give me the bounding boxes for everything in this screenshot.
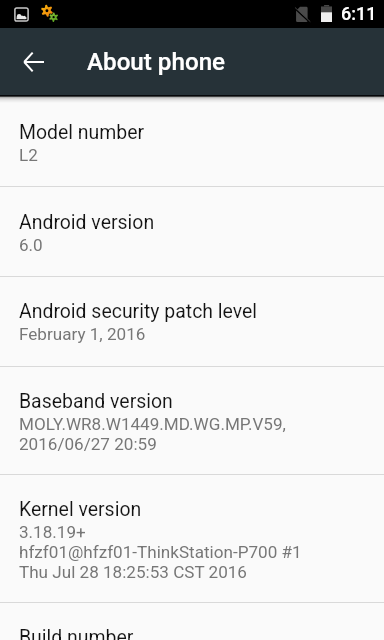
button[interactable]: Model number	[0, 96, 384, 186]
staticText: Android version	[19, 211, 155, 234]
staticText: MOLY.WR8.W1449.MD.WG.MP.V59,	[19, 414, 286, 434]
staticText: About phone	[87, 49, 226, 75]
button[interactable]: Build number	[0, 603, 384, 640]
staticText: 6:11	[341, 4, 377, 24]
staticText: 6.0	[19, 235, 43, 255]
button[interactable]: Android security patch level	[0, 277, 384, 366]
staticText: February 1, 2016	[19, 324, 146, 344]
staticText: Thu Jul 28 18:25:53 CST 2016	[19, 562, 247, 582]
button[interactable]: Android version	[0, 187, 384, 276]
staticText: L2	[19, 145, 38, 165]
staticText: hfzf01@hfzf01-ThinkStation-P700 #1	[19, 542, 302, 562]
staticText: Android security patch level	[19, 300, 258, 323]
button[interactable]: Navigate up	[0, 28, 67, 95]
button[interactable]: Kernel version	[0, 475, 384, 602]
staticText: Kernel version	[19, 498, 142, 521]
staticText: Baseband version	[19, 390, 173, 413]
button[interactable]: Baseband version	[0, 367, 384, 474]
staticText: 3.18.19+	[19, 522, 86, 542]
staticText: 2016/06/27 20:59	[19, 434, 157, 454]
staticText: Model number	[19, 121, 145, 144]
staticText: Build number	[19, 626, 134, 640]
